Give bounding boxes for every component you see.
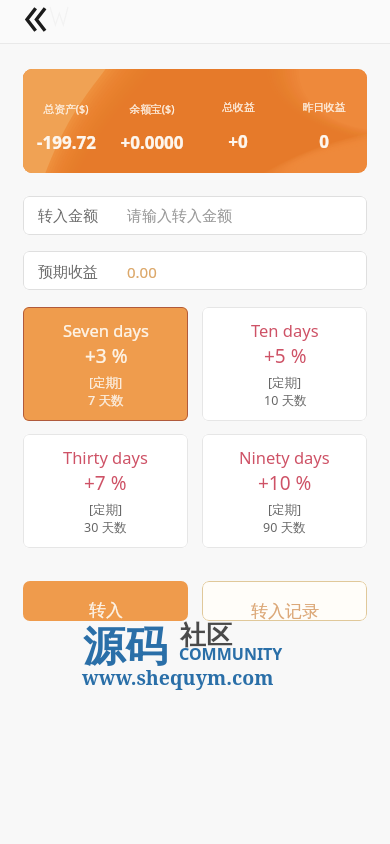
staticText: [定期] bbox=[89, 501, 123, 518]
staticText: 余额宝($) bbox=[129, 101, 175, 116]
staticText: 转入金额 bbox=[38, 207, 98, 226]
staticText: 总资产($) bbox=[43, 101, 89, 116]
staticText: 90 天数 bbox=[263, 519, 306, 536]
staticText: 预期收益 bbox=[38, 263, 98, 282]
button[interactable]: Ninety days bbox=[202, 434, 367, 548]
staticText: +7 % bbox=[84, 470, 127, 496]
staticText: 转入 bbox=[89, 600, 123, 621]
staticText: Ninety days bbox=[239, 446, 330, 468]
staticText: -199.72 bbox=[37, 131, 96, 154]
staticText: +0.0000 bbox=[120, 131, 184, 154]
staticText: 请输入转入金额 bbox=[127, 207, 232, 226]
staticText: +0 bbox=[228, 130, 248, 153]
staticText: +10 % bbox=[258, 470, 312, 496]
staticText: [定期] bbox=[89, 374, 123, 391]
staticText: [定期] bbox=[268, 374, 302, 391]
staticText: 源码 bbox=[83, 621, 167, 674]
staticText: COMMUNITY bbox=[179, 643, 283, 665]
staticText: 0 bbox=[319, 130, 329, 153]
staticText: 转入记录 bbox=[251, 601, 319, 621]
button[interactable]: 转入记录 bbox=[202, 581, 367, 621]
button[interactable]: Thirty days bbox=[23, 434, 188, 548]
staticText: 总收益 bbox=[222, 101, 255, 115]
staticText: 30 天数 bbox=[84, 519, 127, 536]
button[interactable]: Back bbox=[13, 0, 57, 41]
button[interactable]: Seven days bbox=[23, 307, 188, 421]
button[interactable]: 转入 bbox=[23, 581, 188, 621]
staticText: +3 % bbox=[85, 343, 128, 369]
staticText: 社区 bbox=[180, 619, 232, 652]
button[interactable]: Ten days bbox=[202, 307, 367, 421]
staticText: www.shequym.com bbox=[82, 664, 274, 691]
button[interactable]: 预期收益 bbox=[23, 251, 367, 290]
staticText: Seven days bbox=[63, 319, 149, 341]
staticText: 0.00 bbox=[127, 262, 157, 282]
staticText: 昨日收益 bbox=[302, 101, 346, 115]
staticText: 7 天数 bbox=[88, 392, 124, 409]
staticText: Thirty days bbox=[63, 446, 148, 468]
staticText: Ten days bbox=[251, 319, 319, 341]
staticText: [定期] bbox=[268, 501, 302, 518]
staticText: +5 % bbox=[264, 343, 307, 369]
button[interactable]: 转入金额 bbox=[23, 196, 367, 235]
staticText: 10 天数 bbox=[264, 392, 307, 409]
